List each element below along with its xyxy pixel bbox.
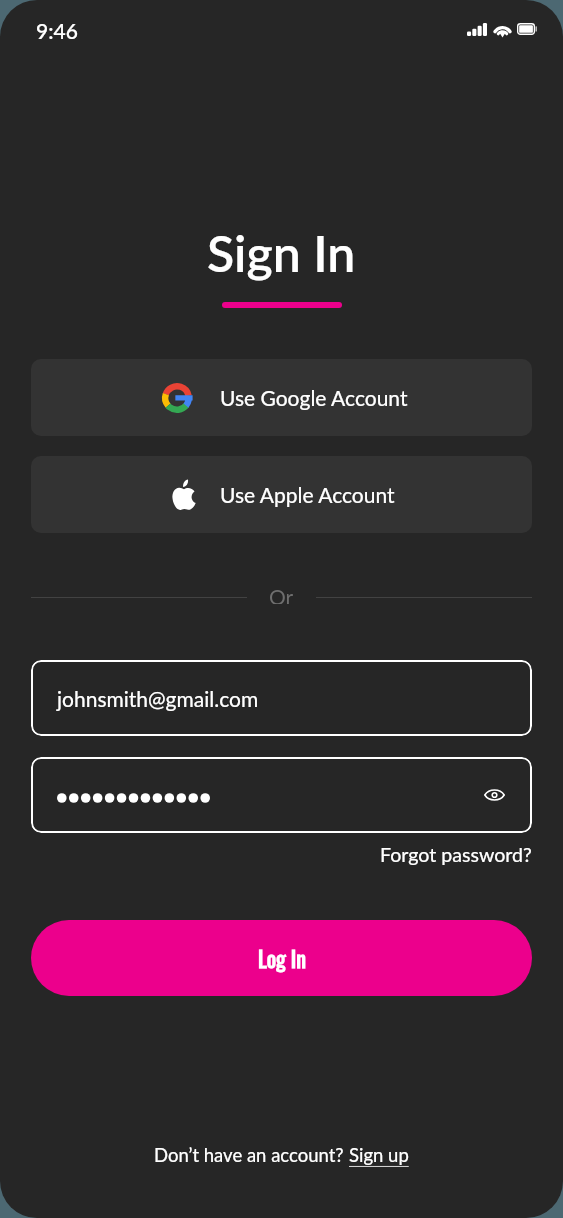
staticText: johnsmith@gmail.com xyxy=(57,686,259,711)
staticText: 9:46 xyxy=(36,18,78,43)
button[interactable]: Log In xyxy=(31,920,532,996)
staticText: Don’t have an account? xyxy=(154,1144,349,1166)
staticText: Sign In xyxy=(207,223,356,283)
staticText: Use Google Account xyxy=(220,385,408,410)
staticText: Or xyxy=(269,584,294,604)
staticText: Log In xyxy=(258,942,306,975)
button[interactable]: Use Google Account xyxy=(31,359,532,436)
button[interactable]: johnsmith@gmail.com xyxy=(31,660,532,736)
button[interactable]: Sign up xyxy=(349,1144,409,1166)
button[interactable]: Show password xyxy=(31,757,532,833)
staticText: Use Apple Account xyxy=(220,482,395,507)
button[interactable]: Use Apple Account xyxy=(31,456,532,533)
button[interactable]: Forgot password? xyxy=(380,843,532,867)
button[interactable]: Show password xyxy=(474,775,514,815)
